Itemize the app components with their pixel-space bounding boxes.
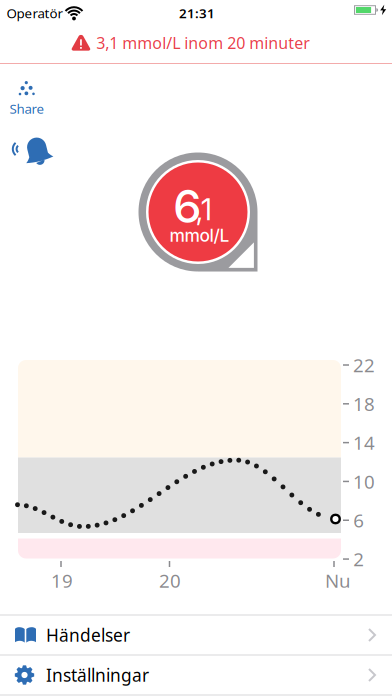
- staticText: 14: [353, 430, 375, 455]
- staticText: Inställningar: [46, 663, 149, 686]
- staticText: ,1: [196, 192, 212, 227]
- staticText: 3,1 mmol/L inom 20 minuter: [96, 32, 310, 53]
- staticText: 21:31: [179, 4, 215, 22]
- staticText: 20: [159, 568, 181, 593]
- button[interactable]: Share: [4, 78, 50, 118]
- button[interactable]: Alarm: [11, 134, 57, 171]
- staticText: Nu: [325, 568, 351, 593]
- staticText: Share: [9, 100, 44, 117]
- staticText: Händelser: [46, 623, 130, 646]
- staticText: 22: [353, 353, 375, 377]
- staticText: 6: [353, 508, 364, 533]
- staticText: 18: [353, 391, 375, 416]
- staticText: 2: [353, 547, 364, 571]
- button[interactable]: Händelser: [0, 615, 392, 654]
- button[interactable]: 3,1 mmol/L inom 20 minuter: [0, 23, 387, 62]
- staticText: Operatör: [6, 4, 63, 22]
- staticText: 6: [173, 179, 202, 234]
- staticText: 10: [353, 469, 375, 494]
- staticText: 19: [51, 568, 73, 593]
- button[interactable]: Inställningar: [0, 655, 392, 694]
- staticText: mmol/L: [169, 225, 229, 246]
